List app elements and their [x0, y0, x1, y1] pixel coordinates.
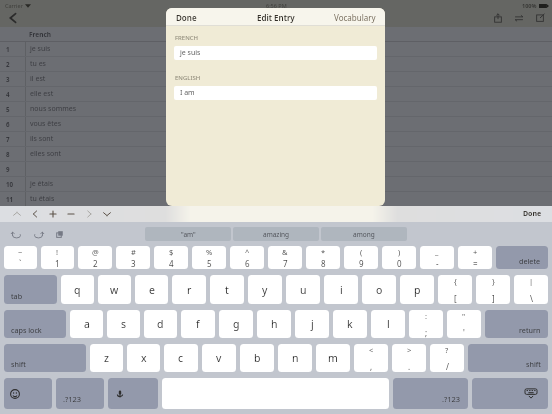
button[interactable]: ( [344, 246, 378, 269]
button[interactable]: Redo [29, 227, 48, 241]
button[interactable]: x [127, 344, 160, 372]
button[interactable]: l [371, 310, 405, 338]
button[interactable]: i [324, 275, 358, 304]
staticText: elle est [30, 89, 54, 99]
button[interactable]: Remove [62, 206, 80, 222]
button[interactable]: $ [154, 246, 188, 269]
button[interactable]: 7 [0, 132, 552, 146]
staticText: @ [92, 247, 99, 257]
button[interactable]: Paste [51, 227, 70, 241]
button[interactable]: 5 [0, 102, 552, 116]
button[interactable]: 10 [0, 177, 552, 191]
button[interactable]: % [192, 246, 226, 269]
button[interactable]: 6 [0, 117, 552, 131]
button[interactable]: o [362, 275, 396, 304]
button[interactable]: j [295, 310, 329, 338]
staticText: > [407, 345, 412, 355]
button[interactable]: k [333, 310, 367, 338]
button[interactable]: Dictate [108, 378, 158, 409]
button[interactable]: 1 [0, 42, 552, 56]
button[interactable]: I am [174, 86, 377, 100]
button[interactable]: + [458, 246, 492, 269]
button[interactable]: h [257, 310, 291, 338]
staticText: m [328, 351, 338, 365]
button[interactable]: Hide keyboard [472, 378, 548, 409]
button[interactable]: Vocabulary [328, 12, 385, 23]
button[interactable]: t [210, 275, 244, 304]
button[interactable]: Emoji [4, 378, 52, 409]
button[interactable]: | [514, 275, 548, 304]
button[interactable]: shift [4, 344, 86, 372]
button[interactable]: v [202, 344, 236, 372]
button[interactable]: } [476, 275, 510, 304]
button[interactable]: & [268, 246, 302, 269]
button[interactable]: Next [80, 206, 98, 222]
button[interactable]: Move up [8, 206, 26, 222]
button[interactable]: Share [491, 11, 505, 25]
button[interactable]: 12 [0, 207, 552, 221]
button[interactable]: 4 [0, 87, 552, 101]
button[interactable]: 2 [0, 57, 552, 71]
button[interactable]: d [144, 310, 177, 338]
staticText: il est [30, 74, 46, 84]
button[interactable]: Hide keyboard [98, 206, 116, 222]
button[interactable]: " [447, 310, 481, 338]
button[interactable]: > [392, 344, 426, 372]
button[interactable]: amazing [233, 227, 319, 241]
button[interactable]: g [219, 310, 253, 338]
button[interactable]: n [278, 344, 312, 372]
button[interactable]: q [61, 275, 94, 304]
button[interactable]: Back [5, 10, 21, 26]
button[interactable]: c [164, 344, 198, 372]
button[interactable]: r [172, 275, 206, 304]
button[interactable]: _ [420, 246, 454, 269]
button[interactable]: je suis [174, 46, 377, 60]
button[interactable]: 3 [0, 72, 552, 86]
button[interactable]: @ [78, 246, 112, 269]
button[interactable]: # [116, 246, 150, 269]
button[interactable]: s [107, 310, 140, 338]
button[interactable]: New entry [533, 11, 547, 25]
button[interactable]: "am" [145, 227, 231, 241]
button[interactable]: caps lock [4, 310, 66, 338]
button[interactable]: z [90, 344, 123, 372]
button[interactable]: shift [468, 344, 548, 372]
button[interactable]: 11 [0, 192, 552, 206]
button[interactable]: b [240, 344, 274, 372]
button[interactable]: Done [166, 12, 203, 23]
button[interactable]: Done [517, 209, 552, 219]
button[interactable]: p [400, 275, 434, 304]
button[interactable]: * [306, 246, 340, 269]
button[interactable]: a [70, 310, 103, 338]
button[interactable]: .?123 [393, 378, 468, 409]
button[interactable]: y [248, 275, 282, 304]
button[interactable]: delete [496, 246, 548, 269]
staticText: 1 [6, 45, 10, 53]
button[interactable]: ^ [230, 246, 264, 269]
button[interactable]: among [321, 227, 407, 241]
button[interactable]: ~ [4, 246, 37, 269]
button[interactable]: Previous [26, 206, 44, 222]
button[interactable]: u [286, 275, 320, 304]
button[interactable]: Add [44, 206, 62, 222]
staticText: vous êtes [30, 119, 62, 129]
button[interactable]: w [98, 275, 131, 304]
button[interactable]: ? [430, 344, 464, 372]
button[interactable]: tab [4, 275, 57, 304]
button[interactable]: { [438, 275, 472, 304]
button[interactable]: 9 [0, 162, 552, 176]
button[interactable]: : [409, 310, 443, 338]
button[interactable]: 8 [0, 147, 552, 161]
staticText: u [300, 283, 307, 297]
button[interactable]: return [485, 310, 548, 338]
button[interactable]: e [135, 275, 168, 304]
button[interactable]: .?123 [56, 378, 104, 409]
button[interactable]: ) [382, 246, 416, 269]
button[interactable]: f [181, 310, 215, 338]
button[interactable]: m [316, 344, 350, 372]
button[interactable]: Swap languages [512, 11, 526, 25]
button[interactable]: ! [41, 246, 74, 269]
button[interactable]: < [354, 344, 388, 372]
button[interactable]: Undo [7, 227, 26, 241]
